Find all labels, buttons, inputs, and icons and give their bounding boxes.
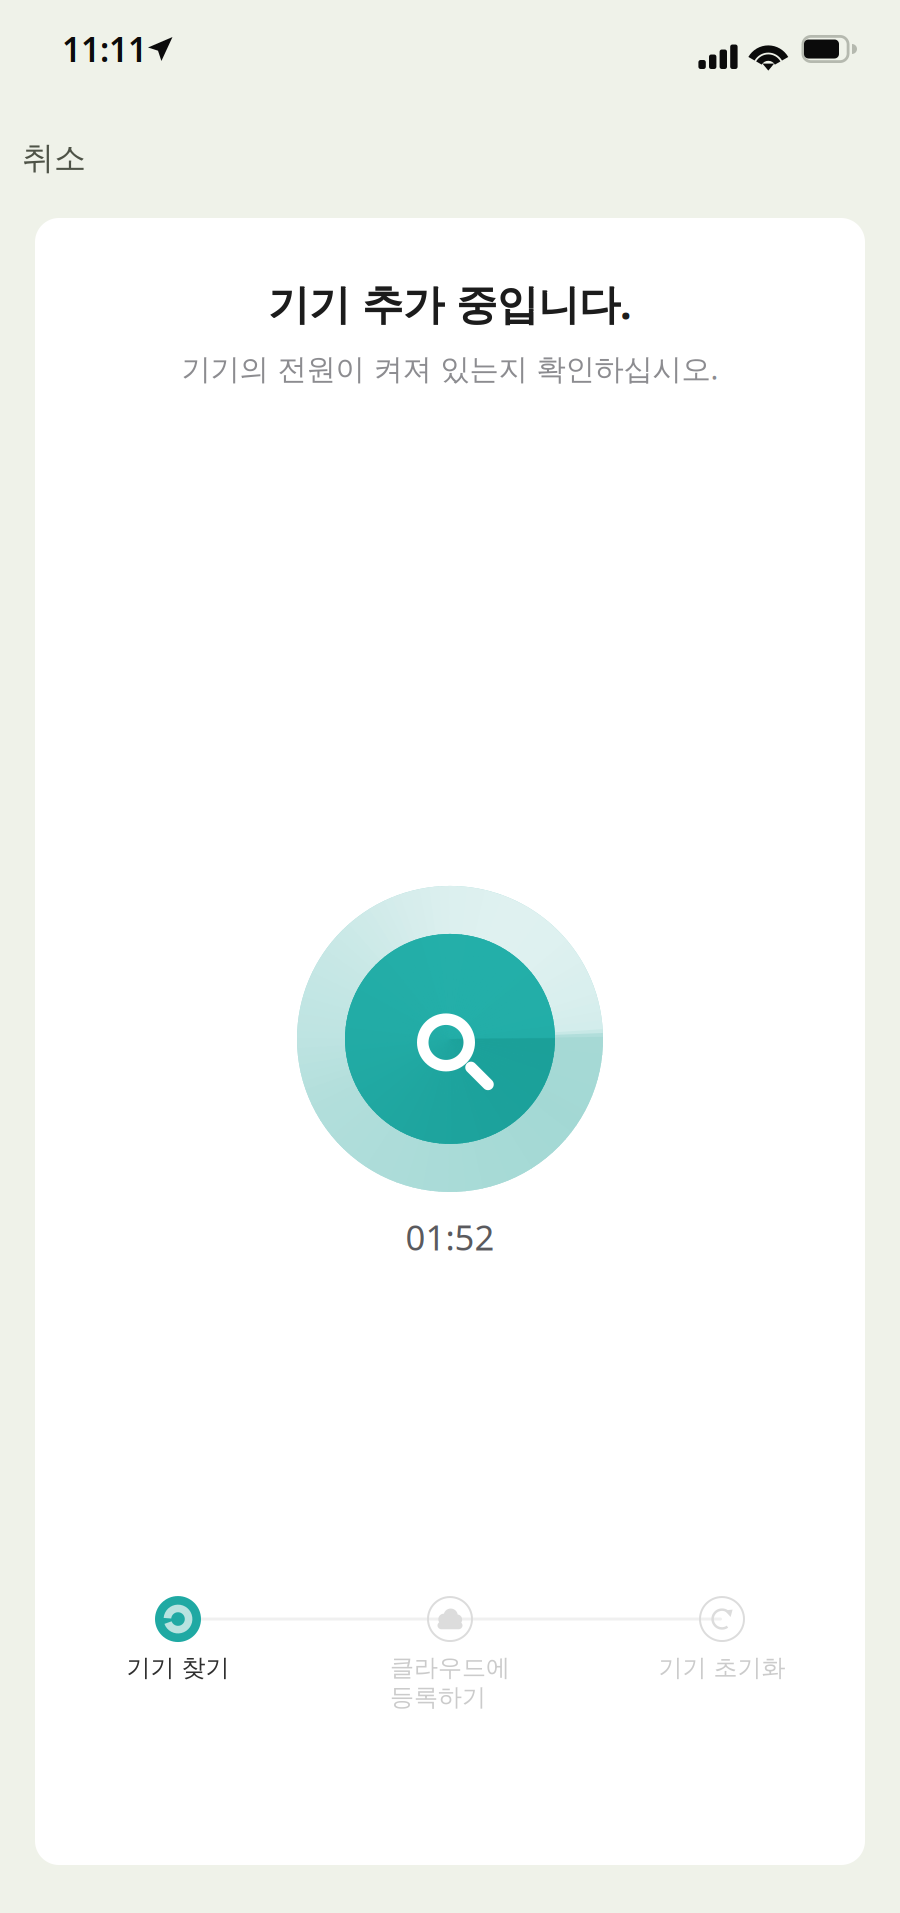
staticText: 기기 찾기 (126, 1653, 229, 1682)
staticText: 기기 추가 중입니다. (268, 276, 632, 331)
staticText: 기기 초기화 (658, 1653, 785, 1682)
staticText: 01:52 (405, 1214, 494, 1260)
button[interactable]: 취소 (0, 126, 106, 190)
staticText: 기기의 전원이 켜져 있는지 확인하십시오. (181, 349, 718, 388)
staticText: 클라우드에 등록하기 (390, 1653, 510, 1712)
staticText: 취소 (22, 138, 86, 178)
staticText: 11:11 (62, 27, 147, 71)
